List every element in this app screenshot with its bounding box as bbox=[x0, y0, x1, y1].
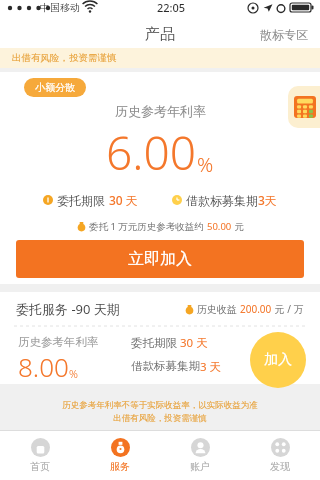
staticText: 8.00 bbox=[18, 349, 69, 384]
staticText: 委托期限 bbox=[131, 335, 180, 351]
staticText: 发现 bbox=[270, 460, 290, 473]
staticText: 200.00 bbox=[240, 302, 272, 316]
staticText: 中国移动 bbox=[40, 1, 80, 14]
staticText: 小额分散 bbox=[35, 81, 75, 94]
staticText: 服务 bbox=[110, 460, 130, 473]
button[interactable]: 小额分散 bbox=[24, 78, 86, 97]
staticText: 首页 bbox=[30, 460, 50, 473]
staticText: 6.00 bbox=[106, 121, 197, 184]
staticText: 历史参考年利率 bbox=[18, 335, 99, 349]
staticText: 历史收益 bbox=[197, 302, 240, 316]
button[interactable]: 加入 bbox=[250, 332, 306, 388]
button[interactable]: 账户 bbox=[160, 431, 240, 480]
button[interactable]: 散标专区 bbox=[248, 23, 320, 46]
button[interactable]: 发现 bbox=[240, 431, 320, 480]
staticText: 3 天 bbox=[200, 359, 222, 375]
staticText: 立即加入 bbox=[128, 249, 192, 269]
staticText: % bbox=[197, 151, 214, 178]
staticText: 30 天 bbox=[180, 335, 208, 351]
staticText: 元 / 万 bbox=[272, 302, 304, 316]
button[interactable]: Calculator bbox=[288, 86, 320, 128]
staticText: 历史参考年利率 bbox=[115, 103, 206, 119]
staticText: 委托服务 -90 天期 bbox=[16, 300, 120, 318]
staticText: 出借有风险，投资需谨慎 bbox=[113, 413, 207, 424]
staticText: 50.00 bbox=[207, 220, 232, 233]
button[interactable]: 立即加入 bbox=[16, 240, 304, 278]
staticText: 账户 bbox=[190, 460, 210, 473]
staticText: 22:05 bbox=[157, 0, 186, 15]
staticText: 散标专区 bbox=[260, 27, 308, 42]
staticText: % bbox=[69, 366, 78, 381]
staticText: 借款标募集期 bbox=[186, 193, 258, 208]
staticText: 30 天 bbox=[109, 192, 138, 208]
staticText: 元 bbox=[232, 220, 244, 233]
staticText: 加入 bbox=[264, 351, 292, 369]
button[interactable]: 首页 bbox=[0, 431, 80, 480]
staticText: 产品 bbox=[145, 25, 175, 44]
staticText: 出借有风险，投资需谨慎 bbox=[12, 52, 117, 64]
staticText: 委托 1 万元历史参考收益约 bbox=[89, 220, 207, 233]
staticText: 历史参考年利率不等于实际收益率，以实际收益为准 bbox=[62, 400, 258, 411]
staticText: 3天 bbox=[258, 192, 277, 208]
staticText: 委托期限 bbox=[57, 192, 109, 208]
button[interactable]: 服务 bbox=[80, 431, 160, 480]
staticText: 借款标募集期 bbox=[131, 359, 200, 373]
